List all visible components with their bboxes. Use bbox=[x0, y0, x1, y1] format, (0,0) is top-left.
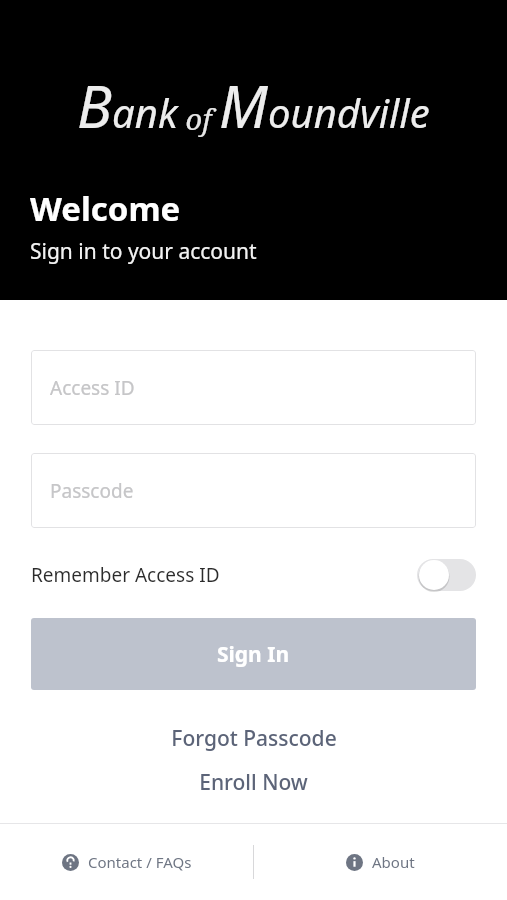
staticText: ank bbox=[112, 85, 178, 139]
button[interactable]: Access ID bbox=[31, 350, 476, 425]
button[interactable]: Forgot Passcode bbox=[0, 724, 507, 753]
staticText: Contact / FAQs bbox=[88, 852, 192, 872]
button[interactable]: Enroll Now bbox=[0, 768, 507, 797]
button[interactable]: About bbox=[254, 824, 507, 900]
staticText: Sign in to your account bbox=[30, 237, 257, 266]
staticText: oundville bbox=[268, 85, 430, 139]
other: About bbox=[346, 854, 363, 871]
staticText: About bbox=[372, 852, 415, 872]
button[interactable]: Sign In bbox=[31, 618, 476, 690]
staticText: B bbox=[77, 66, 112, 145]
staticText: Passcode bbox=[50, 478, 134, 504]
other: Contact and FAQs bbox=[62, 854, 79, 871]
staticText: Access ID bbox=[50, 375, 135, 401]
staticText: of bbox=[178, 99, 219, 138]
staticText: M bbox=[219, 66, 268, 145]
staticText: Sign In bbox=[217, 640, 290, 669]
button[interactable]: Remember Access ID bbox=[31, 550, 476, 600]
staticText: Forgot Passcode bbox=[171, 724, 337, 753]
button[interactable]: Contact and FAQs bbox=[0, 824, 253, 900]
staticText: Remember Access ID bbox=[31, 562, 220, 588]
staticText: Welcome bbox=[30, 186, 181, 231]
staticText: Enroll Now bbox=[199, 768, 308, 797]
button[interactable]: Passcode bbox=[31, 453, 476, 528]
